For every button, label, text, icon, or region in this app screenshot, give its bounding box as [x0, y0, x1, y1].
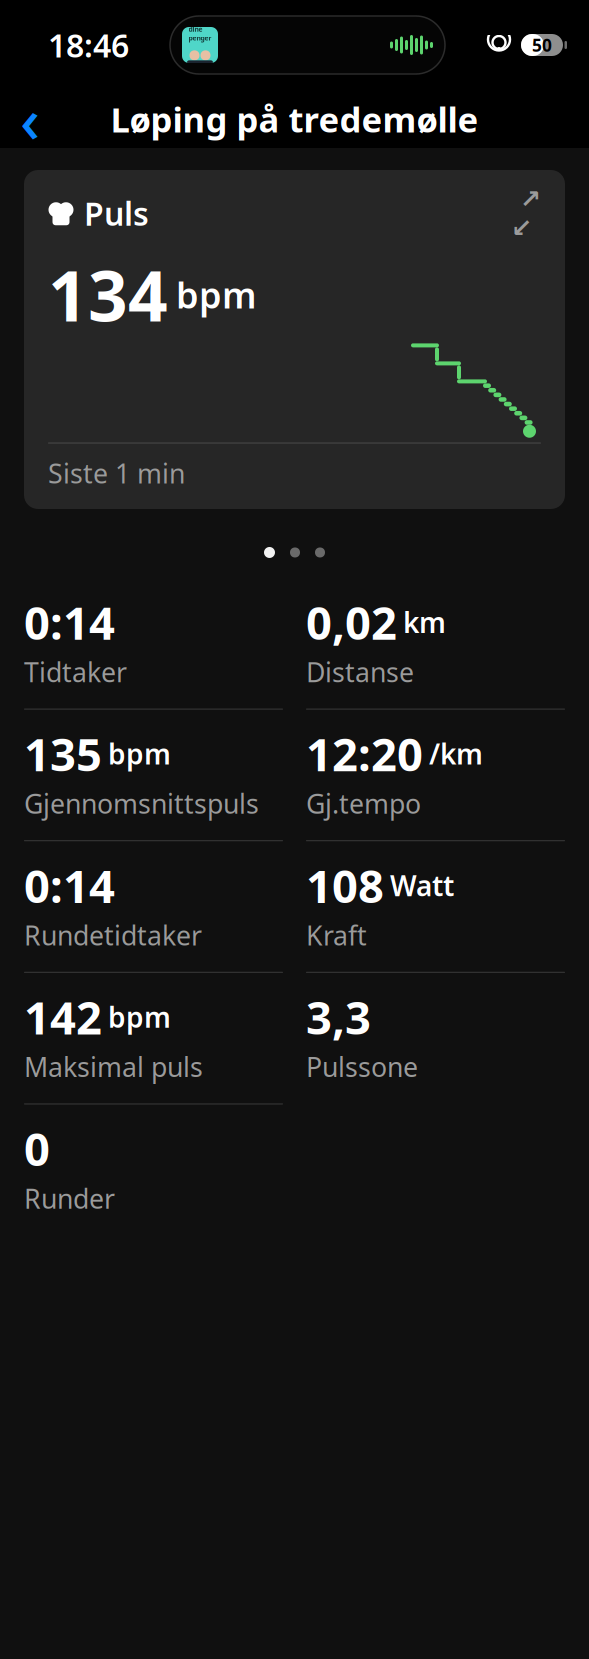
staticText: 135 [24, 724, 102, 784]
staticText: ‹ [20, 78, 40, 160]
staticText: /km [429, 735, 483, 772]
staticText: Gj.tempo [306, 786, 421, 821]
staticText: 3,3 [306, 987, 371, 1047]
staticText: bpm [108, 735, 171, 772]
staticText: 142 [24, 987, 102, 1047]
staticText: Distanse [306, 654, 414, 690]
staticText: Puls [84, 192, 149, 234]
staticText: Runder [24, 1181, 115, 1216]
staticText: Løping på tredemølle [110, 96, 478, 142]
staticText: 0,02 [306, 592, 397, 652]
button[interactable]: Back [0, 91, 60, 147]
staticText: 18:46 [48, 24, 129, 66]
staticText: Siste 1 min [48, 456, 185, 491]
staticText: Rundetidtaker [24, 917, 202, 953]
staticText: bpm [108, 998, 171, 1035]
staticText: Maksimal puls [24, 1049, 203, 1084]
staticText: ↙ [511, 213, 532, 242]
staticText: 134 [48, 248, 168, 341]
staticText: km [403, 603, 446, 641]
button[interactable]: Expand heart rate chart [511, 198, 541, 228]
staticText: Gjennomsnittspuls [24, 786, 259, 821]
staticText: dine penger [188, 25, 211, 42]
staticText: Pulssone [306, 1049, 418, 1084]
staticText: 0 [24, 1118, 50, 1179]
staticText: 12:20 [306, 724, 423, 784]
staticText: 108 [306, 855, 384, 915]
staticText: Kraft [306, 917, 367, 953]
staticText: Watt [390, 867, 454, 904]
staticText: 0:14 [24, 855, 115, 915]
staticText: bpm [176, 271, 257, 318]
staticText: Tidtaker [24, 654, 127, 690]
staticText: 0:14 [24, 592, 115, 652]
staticText: ↗ [520, 184, 541, 213]
staticText: 50 [532, 33, 552, 56]
